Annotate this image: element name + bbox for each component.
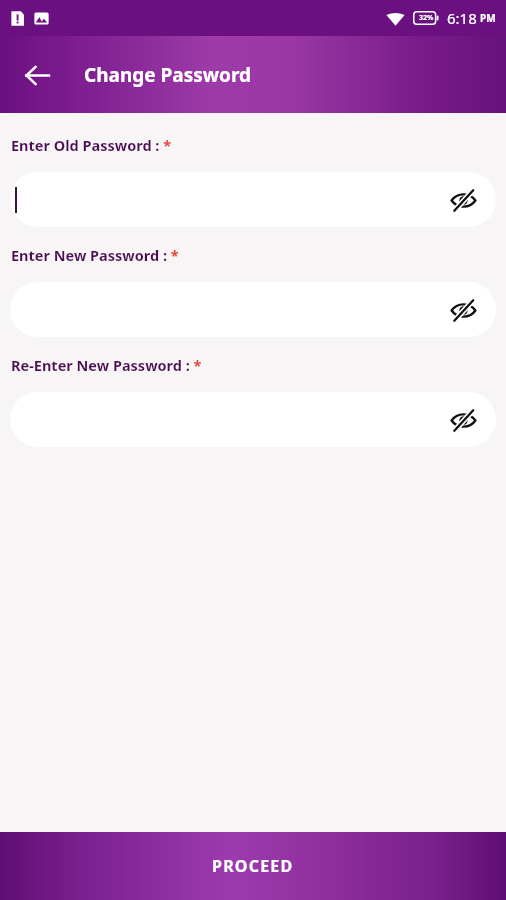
button[interactable]: PROCEED — [0, 832, 506, 900]
staticText: 6:18 — [447, 8, 477, 28]
staticText: Re-Enter New Password : * — [11, 355, 202, 375]
button[interactable]: Show password — [10, 282, 496, 337]
staticText: Enter Old Password : * — [11, 135, 172, 155]
staticText: 32% — [419, 13, 434, 23]
button[interactable]: Show password — [10, 392, 496, 447]
staticText: Enter New Password : * — [11, 245, 179, 265]
button[interactable]: Show password — [10, 172, 496, 227]
button[interactable]: Show password — [443, 290, 483, 330]
button[interactable]: Show password — [443, 180, 483, 220]
button[interactable]: Back — [16, 54, 58, 96]
staticText: PROCEED — [212, 855, 294, 877]
button[interactable]: Show password — [443, 400, 483, 440]
staticText: Change Password — [84, 62, 252, 88]
staticText: PM — [480, 11, 496, 25]
